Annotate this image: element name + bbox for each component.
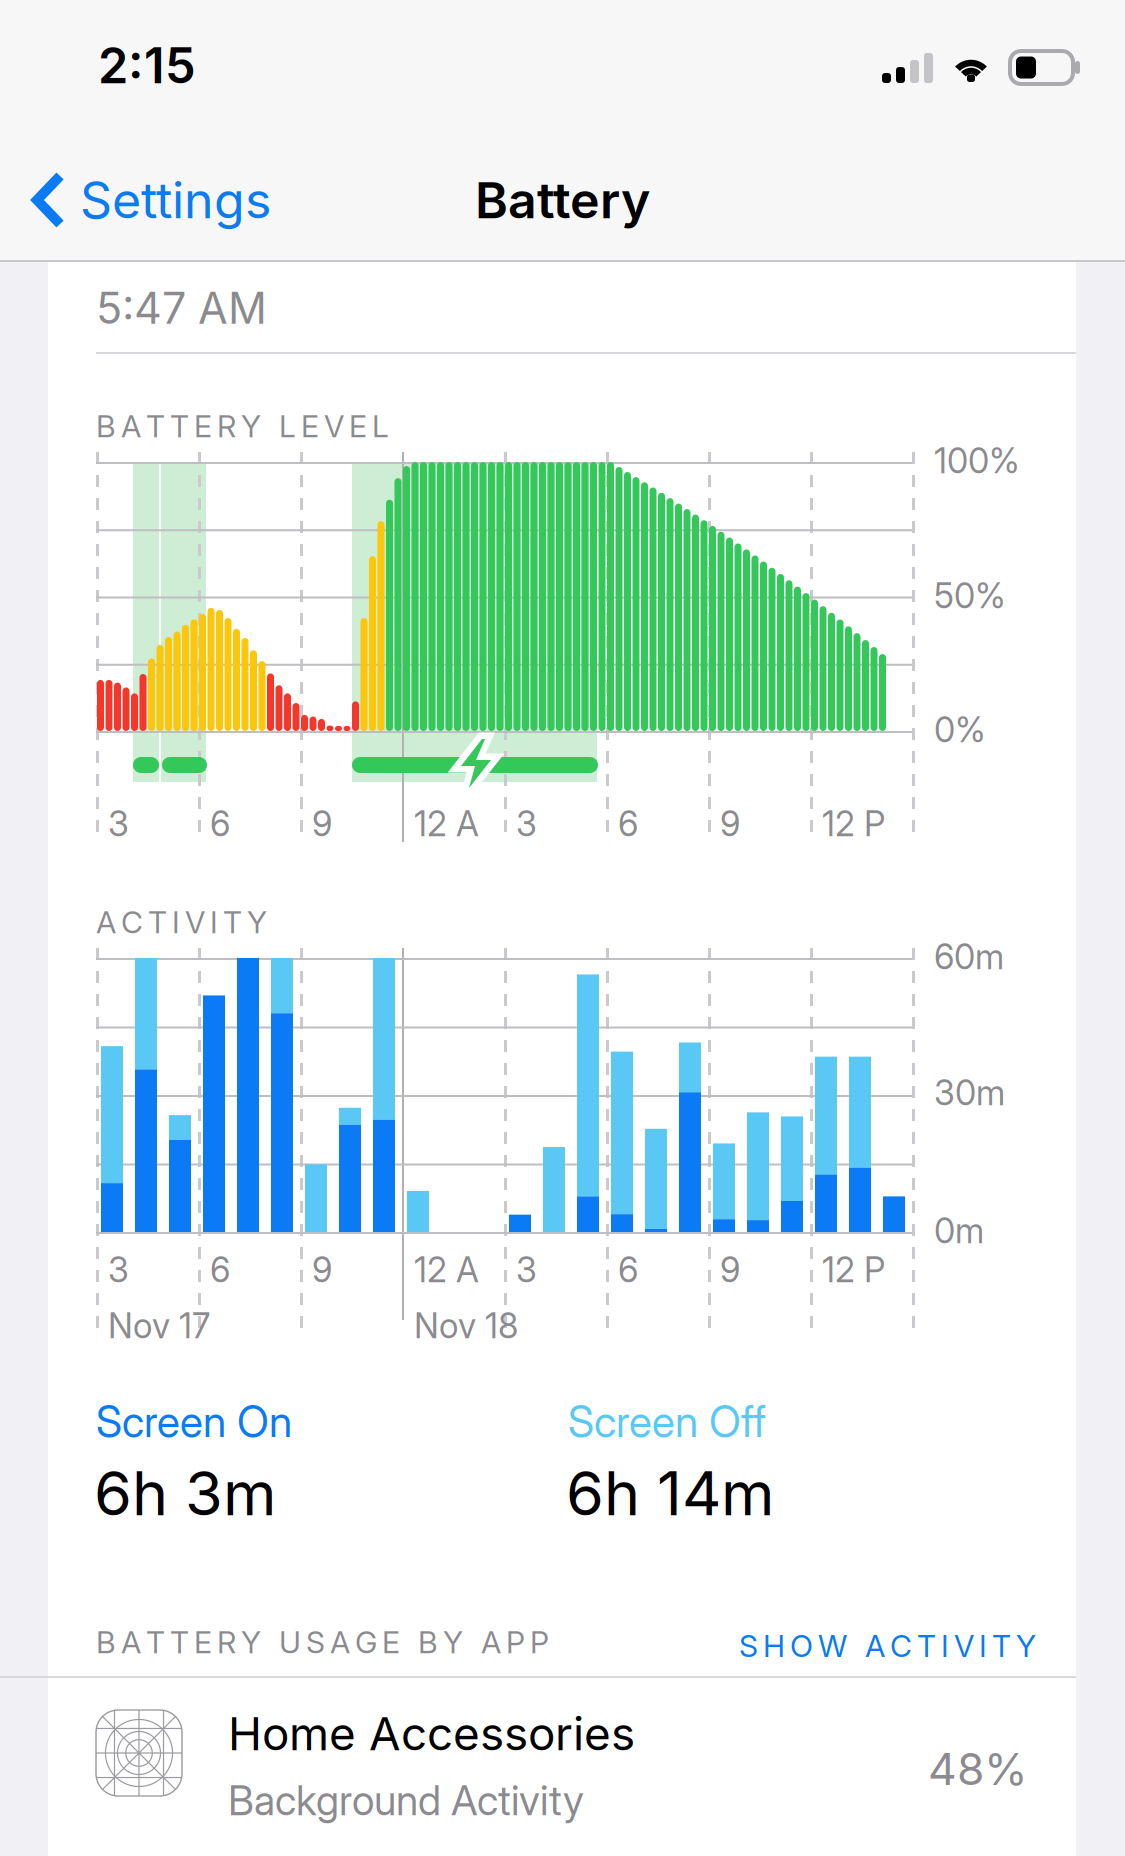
staticText: Screen Off: [568, 1396, 766, 1447]
staticText: 0%: [934, 709, 986, 750]
staticText: 3: [516, 803, 537, 844]
staticText: 2:15: [98, 36, 196, 95]
staticText: S H O W A C T I V I T Y: [739, 1628, 1036, 1664]
staticText: 0m: [934, 1210, 984, 1251]
staticText: 6: [618, 1249, 638, 1290]
staticText: 6h 14m: [566, 1456, 774, 1530]
staticText: 12 P: [822, 803, 885, 844]
staticText: Background Activity: [228, 1776, 584, 1825]
staticText: 5:47 AM: [96, 282, 267, 334]
staticText: 3: [516, 1249, 537, 1290]
button[interactable]: Home Accessories: [48, 1678, 1076, 1856]
staticText: 6: [210, 803, 230, 844]
staticText: 30m: [934, 1072, 1005, 1113]
staticText: Settings: [80, 170, 271, 230]
staticText: 9: [720, 803, 740, 844]
staticText: 9: [312, 1249, 332, 1290]
staticText: Screen On: [96, 1396, 292, 1447]
staticText: 12 A: [414, 803, 479, 844]
staticText: Nov 17: [108, 1305, 210, 1346]
staticText: A C T I V I T Y: [96, 904, 267, 941]
staticText: 60m: [934, 936, 1004, 977]
staticText: 3: [108, 803, 129, 844]
staticText: 3: [108, 1249, 129, 1290]
staticText: B A T T E R Y U S A G E B Y A P P: [96, 1624, 549, 1661]
staticText: 6: [618, 803, 638, 844]
staticText: 48%: [928, 1742, 1028, 1796]
staticText: 9: [312, 803, 332, 844]
staticText: 9: [720, 1249, 740, 1290]
staticText: 6h 3m: [94, 1456, 276, 1530]
staticText: Battery: [475, 170, 650, 230]
staticText: B A T T E R Y L E V E L: [96, 408, 389, 445]
staticText: 50%: [934, 575, 1006, 616]
staticText: 12 P: [822, 1249, 885, 1290]
staticText: 6: [210, 1249, 230, 1290]
staticText: 12 A: [414, 1249, 479, 1290]
button[interactable]: S H O W A C T I V I T Y: [716, 1624, 1036, 1668]
button[interactable]: Settings: [30, 160, 350, 240]
staticText: Home Accessories: [228, 1706, 635, 1761]
staticText: 100%: [934, 440, 1020, 481]
staticText: Nov 18: [414, 1305, 518, 1346]
